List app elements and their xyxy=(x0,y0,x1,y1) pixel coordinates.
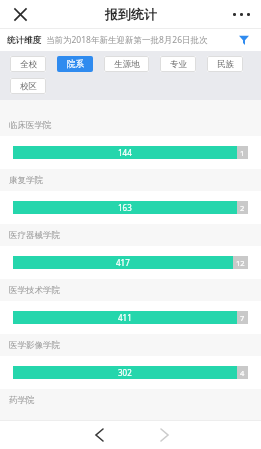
button[interactable]: 全校 xyxy=(10,56,46,72)
staticText: 144 xyxy=(118,147,132,158)
staticText: 民族 xyxy=(217,59,234,70)
staticText: 411 xyxy=(118,312,132,323)
staticText: 302 xyxy=(118,367,132,378)
staticText: 院系 xyxy=(67,59,84,70)
staticText: 康复学院 xyxy=(9,175,43,186)
button[interactable]: 校区 xyxy=(10,78,46,94)
button[interactable]: 医学技术学院 xyxy=(0,279,261,334)
button[interactable]: 医学影像学院 xyxy=(0,334,261,389)
button[interactable]: Next page xyxy=(153,424,175,446)
staticText: 校区 xyxy=(20,81,37,92)
staticText: 2 xyxy=(240,203,245,213)
button[interactable]: 医疗器械学院 xyxy=(0,224,261,279)
button[interactable]: 专业 xyxy=(160,56,196,72)
button[interactable]: Filter xyxy=(233,29,255,51)
button[interactable]: 院系 xyxy=(57,56,93,72)
staticText: 4 xyxy=(240,368,245,378)
staticText: 统计维度 xyxy=(7,35,41,46)
button[interactable]: 临床医学院 xyxy=(0,114,261,169)
staticText: 417 xyxy=(116,257,130,268)
staticText: 医疗器械学院 xyxy=(9,230,60,241)
button[interactable]: 康复学院 xyxy=(0,169,261,224)
staticText: 1 xyxy=(240,148,245,158)
staticText: 7 xyxy=(240,313,245,323)
staticText: 医学技术学院 xyxy=(9,285,60,296)
staticText: 报到统计 xyxy=(105,6,157,22)
staticText: 163 xyxy=(118,202,132,213)
staticText: 医学影像学院 xyxy=(9,340,60,351)
button[interactable]: 民族 xyxy=(207,56,243,72)
staticText: 生源地 xyxy=(114,59,140,70)
staticText: 临床医学院 xyxy=(9,120,52,131)
button[interactable]: Close xyxy=(8,2,32,26)
staticText: 药学院 xyxy=(9,395,35,406)
staticText: 全校 xyxy=(20,59,37,70)
button[interactable]: 生源地 xyxy=(104,56,149,72)
button[interactable]: Previous page xyxy=(88,424,110,446)
staticText: 当前为2018年新生迎新第一批8月26日批次 xyxy=(46,34,208,46)
staticText: 专业 xyxy=(170,59,187,70)
staticText: 12 xyxy=(236,258,245,268)
button[interactable]: More options xyxy=(227,0,255,28)
